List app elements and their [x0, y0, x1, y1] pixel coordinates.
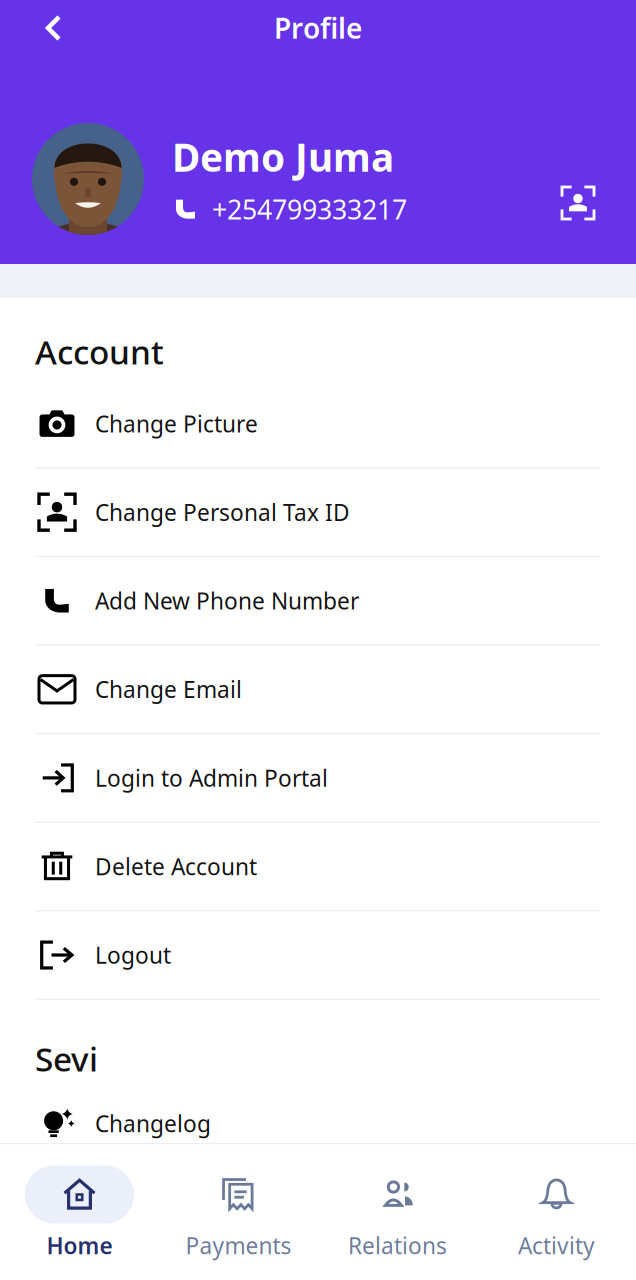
- button[interactable]: Payments: [159, 1165, 318, 1261]
- button[interactable]: Changelog: [0, 1079, 636, 1143]
- button[interactable]: Activity: [477, 1165, 636, 1261]
- button[interactable]: Change Personal Tax ID: [0, 469, 636, 557]
- staticText: Sevi: [35, 1036, 98, 1081]
- staticText: Logout: [95, 940, 171, 970]
- staticText: Change Email: [95, 674, 242, 704]
- button[interactable]: Delete Account: [0, 823, 636, 911]
- staticText: Change Picture: [95, 408, 258, 439]
- button[interactable]: Home: [0, 1165, 159, 1261]
- button[interactable]: Scan profile: [554, 131, 602, 227]
- staticText: Account: [35, 329, 164, 374]
- staticText: Profile: [274, 9, 362, 47]
- button[interactable]: Relations: [318, 1165, 477, 1261]
- staticText: Change Personal Tax ID: [95, 497, 350, 527]
- button[interactable]: Logout: [0, 911, 636, 1000]
- staticText: Delete Account: [95, 851, 257, 881]
- staticText: Login to Admin Portal: [95, 763, 328, 793]
- button[interactable]: Back: [26, 0, 82, 56]
- staticText: +254799333217: [212, 191, 407, 227]
- button[interactable]: Add New Phone Number: [0, 557, 636, 646]
- staticText: Payments: [185, 1230, 291, 1261]
- staticText: Changelog: [95, 1108, 211, 1138]
- button[interactable]: Change Email: [0, 646, 636, 734]
- staticText: Relations: [348, 1230, 447, 1261]
- staticText: Activity: [518, 1230, 595, 1261]
- button[interactable]: Login to Admin Portal: [0, 734, 636, 823]
- staticText: Add New Phone Number: [95, 586, 359, 616]
- staticText: Home: [46, 1230, 112, 1261]
- button[interactable]: Change Picture: [0, 380, 636, 469]
- staticText: Demo Juma: [172, 131, 394, 182]
